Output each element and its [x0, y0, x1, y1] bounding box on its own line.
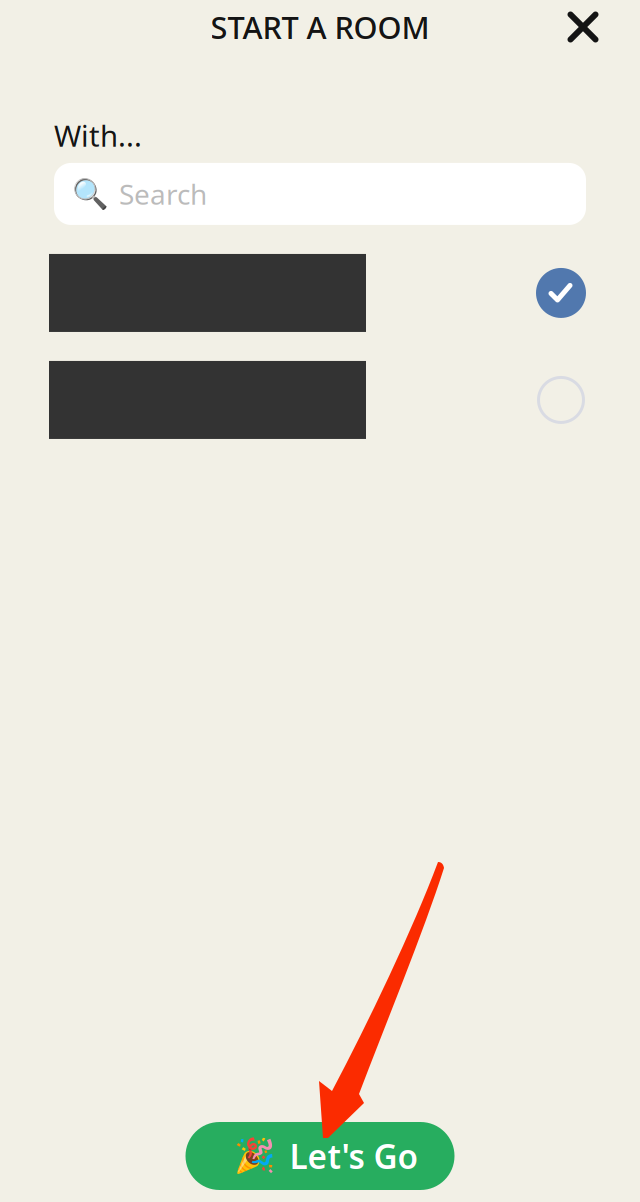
staticText: Let's Go	[289, 1134, 418, 1178]
staticText: With...	[54, 116, 142, 155]
staticText: 🔍	[72, 177, 109, 211]
staticText: START A ROOM	[210, 7, 429, 47]
button[interactable]: Close	[548, 0, 618, 54]
button[interactable]	[0, 361, 640, 439]
staticText: Search	[119, 175, 207, 213]
button[interactable]: 🔍	[54, 163, 586, 225]
button[interactable]: 🎉	[185, 1122, 454, 1190]
staticText: 🎉	[233, 1137, 275, 1175]
button[interactable]	[0, 254, 640, 332]
